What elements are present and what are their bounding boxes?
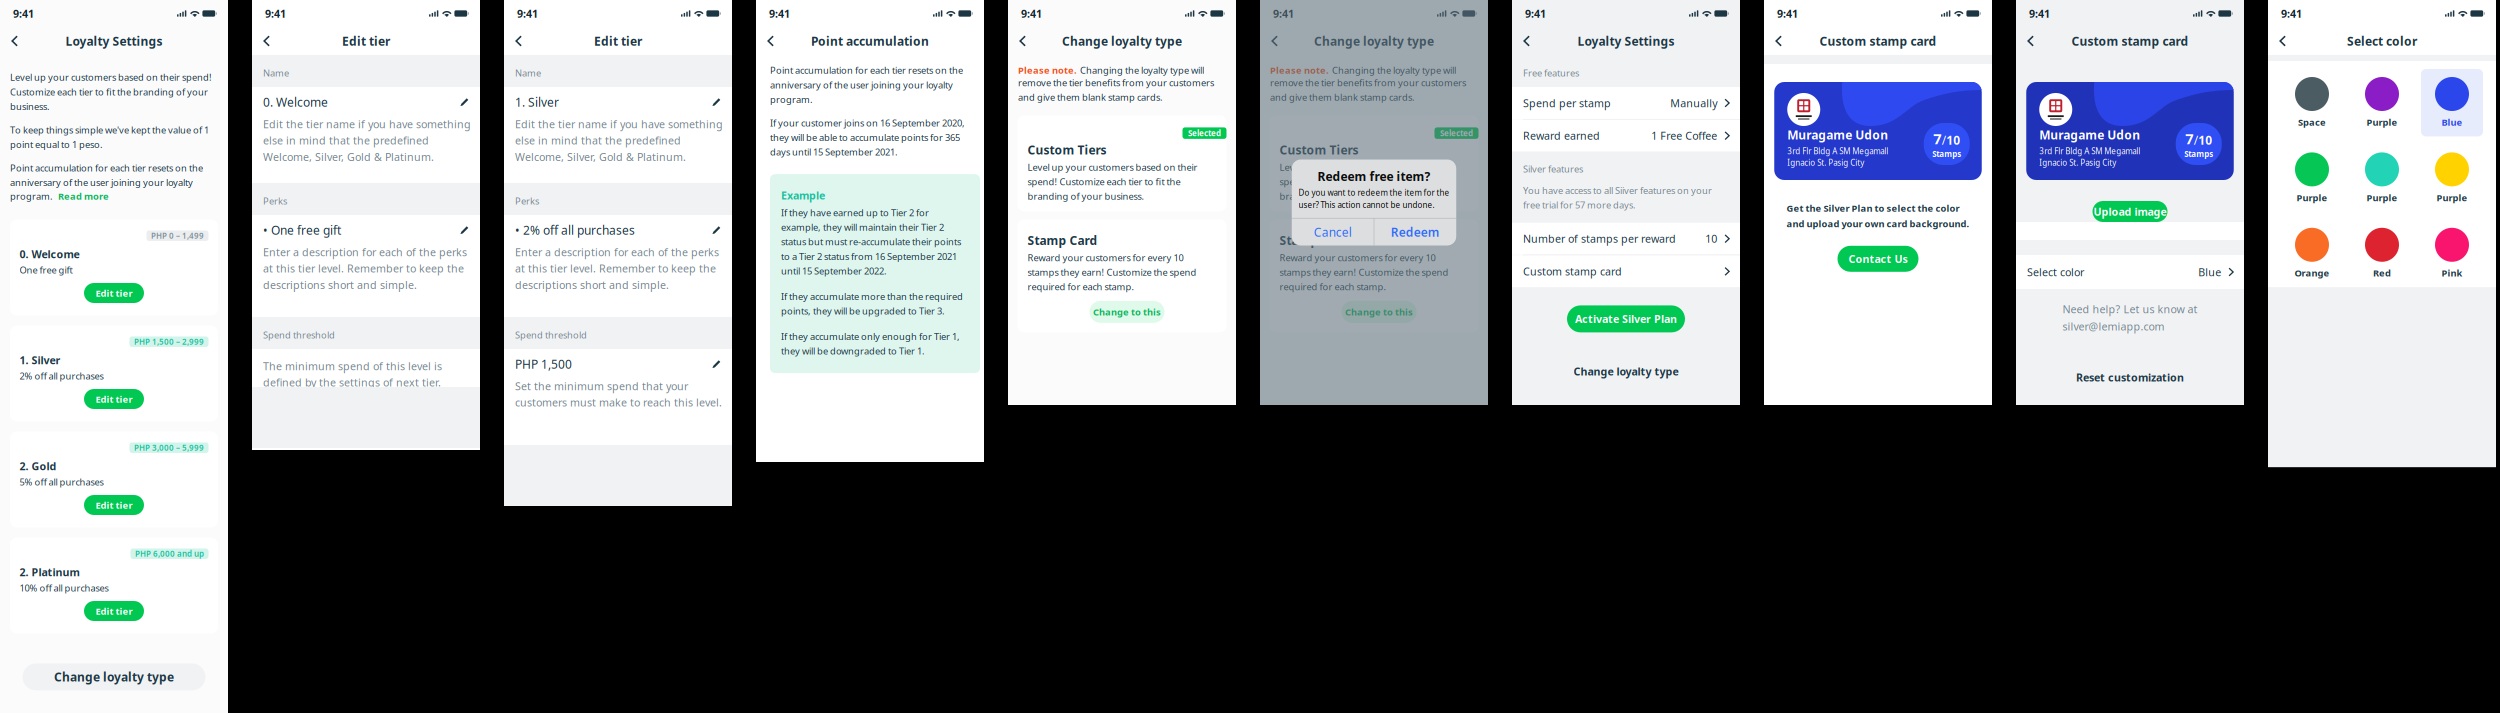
button[interactable]: Back xyxy=(504,28,539,54)
staticText: PHP 1,500 xyxy=(515,356,572,372)
button[interactable]: Blue xyxy=(2421,69,2483,136)
button[interactable]: 1. Silver xyxy=(504,87,732,117)
staticText: The minimum spend of this level is defin… xyxy=(263,359,442,389)
staticText: Level up your customers based on their s… xyxy=(1027,161,1197,202)
staticText: Stamps xyxy=(1932,149,1961,159)
staticText: 9:41 xyxy=(1525,6,1546,21)
staticText: • One free gift xyxy=(263,222,341,238)
staticText: 1 Free Coffee xyxy=(1651,129,1717,143)
staticText: Point accumulation for each tier resets … xyxy=(10,162,203,189)
button[interactable]: • 2% off all purchases xyxy=(504,215,732,245)
button[interactable]: 0. Welcome xyxy=(252,87,480,117)
button[interactable]: Back xyxy=(1512,28,1547,54)
button[interactable]: Back xyxy=(2016,28,2051,54)
button[interactable]: Read more xyxy=(58,190,109,202)
button[interactable]: Upload image xyxy=(2092,201,2167,222)
button[interactable]: Back xyxy=(1260,28,1295,54)
staticText: PHP 6,000 and up xyxy=(135,548,204,559)
button[interactable]: Change loyalty type xyxy=(22,663,205,690)
staticText: Point accumulation xyxy=(811,33,929,49)
button[interactable]: Contact Us xyxy=(1837,246,1918,272)
staticText: Activate Silver Plan xyxy=(1575,312,1677,326)
button[interactable]: Activate Silver Plan xyxy=(1567,305,1685,332)
button[interactable]: PHP 1,500 xyxy=(504,349,732,379)
staticText: 0. Welcome xyxy=(263,94,328,110)
staticText: Edit tier xyxy=(95,605,132,617)
button[interactable]: Spend per stamp xyxy=(1512,87,1740,119)
staticText: Change loyalty type xyxy=(1573,364,1678,378)
staticText: If they accumulate only enough for Tier … xyxy=(781,330,960,357)
staticText: Edit tier xyxy=(342,33,390,49)
staticText: If they have earned up to Tier 2 for exa… xyxy=(781,206,961,277)
button[interactable]: Change to this xyxy=(1341,301,1416,323)
staticText: Point accumulation for each tier resets … xyxy=(770,64,963,106)
button[interactable]: Pink xyxy=(2421,220,2483,287)
button[interactable]: Redeem xyxy=(1374,218,1456,245)
staticText: Custom stamp card xyxy=(1819,33,1936,49)
staticText: 5% off all purchases xyxy=(19,476,103,488)
button[interactable]: Edit tier xyxy=(84,495,144,515)
button[interactable]: Red xyxy=(2351,220,2413,287)
button[interactable]: Back xyxy=(0,28,35,54)
staticText: Ignacio St. Pasig City xyxy=(1787,157,1864,168)
staticText: Changing the loyalty type will xyxy=(1080,64,1204,76)
button[interactable]: Back xyxy=(2268,28,2303,54)
staticText: 0. Welcome xyxy=(19,247,79,261)
staticText: / xyxy=(1942,132,1946,148)
staticText: Contact Us xyxy=(1848,252,1907,266)
staticText: Silver features xyxy=(1523,163,1583,175)
staticText: Stamp Card xyxy=(1279,232,1349,248)
staticText: Name xyxy=(515,67,541,79)
button[interactable]: Purple xyxy=(2351,69,2413,136)
button[interactable]: Number of stamps per reward xyxy=(1512,223,1740,255)
staticText: Get the Silver Plan to select the color … xyxy=(1786,202,1969,230)
button[interactable]: Change loyalty type xyxy=(1573,360,1678,382)
staticText: 7 xyxy=(1933,129,1941,148)
button[interactable]: Purple xyxy=(2281,144,2343,212)
staticText: Selected xyxy=(1188,128,1221,138)
staticText: 10 xyxy=(1946,132,1960,148)
staticText: Cancel xyxy=(1314,224,1352,240)
button[interactable]: Back xyxy=(1008,28,1043,54)
staticText: Select color xyxy=(2347,33,2417,49)
staticText: Do you want to redeem the item for the u… xyxy=(1298,187,1449,210)
button[interactable]: Purple xyxy=(2421,144,2483,212)
button[interactable]: Back xyxy=(756,28,791,54)
staticText: Example xyxy=(781,188,825,202)
button[interactable]: • One free gift xyxy=(252,215,480,245)
staticText: You have access to all Siiver features o… xyxy=(1523,184,1712,211)
staticText: Select color xyxy=(2027,265,2084,279)
staticText: Change to this xyxy=(1093,306,1161,318)
button[interactable]: Edit tier xyxy=(84,601,144,621)
staticText: Custom stamp card xyxy=(2071,33,2188,49)
button[interactable]: Reset customization xyxy=(2076,366,2184,388)
button[interactable]: Custom stamp card xyxy=(1512,255,1740,287)
staticText: Purple xyxy=(2366,191,2397,204)
staticText: Perks xyxy=(515,195,539,207)
staticText: 9:41 xyxy=(1273,6,1294,21)
button[interactable]: Reward earned xyxy=(1512,120,1740,152)
button[interactable]: Space xyxy=(2281,69,2343,136)
staticText: Red xyxy=(2373,267,2391,279)
staticText: Edit the tier name if you have something… xyxy=(515,117,723,164)
button[interactable]: Select color xyxy=(2016,255,2244,289)
button[interactable]: Edit tier xyxy=(84,283,144,303)
staticText: Redeem free item? xyxy=(1317,168,1430,184)
button[interactable]: Back xyxy=(252,28,287,54)
staticText: remove the tier benefits from your custo… xyxy=(1018,76,1214,103)
staticText: PHP 1,500 – 2,999 xyxy=(134,336,204,347)
staticText: Enter a description for each of the perk… xyxy=(263,245,467,292)
button[interactable]: Edit tier xyxy=(84,389,144,409)
button[interactable]: Back xyxy=(1764,28,1799,54)
staticText: Free features xyxy=(1523,67,1579,79)
staticText: Stamp Card xyxy=(1027,232,1097,248)
staticText: Reward your customers for every 10 stamp… xyxy=(1279,251,1448,293)
button[interactable]: Change to this xyxy=(1089,301,1164,323)
button[interactable]: Purple xyxy=(2351,144,2413,212)
staticText: PHP 3,000 – 5,999 xyxy=(134,442,204,453)
button[interactable]: Orange xyxy=(2281,220,2343,287)
button[interactable]: Cancel xyxy=(1292,218,1374,245)
staticText: 2. Gold xyxy=(19,459,56,473)
staticText: remove the tier benefits from your custo… xyxy=(1270,76,1466,103)
staticText: 9:41 xyxy=(1021,6,1042,21)
